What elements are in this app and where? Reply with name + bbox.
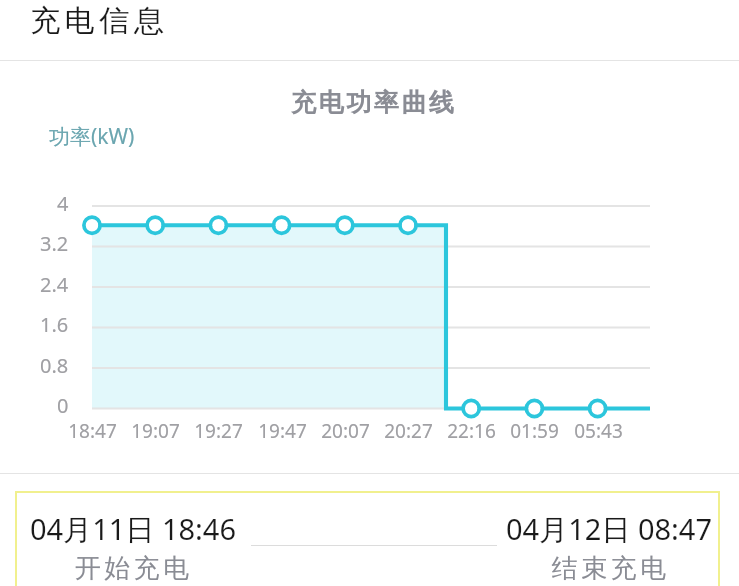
staticText: 18:47	[68, 418, 117, 444]
staticText: 19:27	[194, 418, 243, 444]
staticText: 04月11日 18:46	[30, 509, 237, 549]
staticText: 20:07	[321, 418, 370, 444]
staticText: 结束充电	[550, 552, 668, 585]
staticText: 充电功率曲线	[291, 87, 457, 118]
staticText: 开始充电	[73, 552, 191, 585]
staticText: 充电信息	[28, 2, 166, 40]
staticText: 04月12日 08:47	[506, 509, 713, 549]
staticText: 功率(kW)	[49, 122, 135, 151]
button[interactable]: 充电信息	[0, 0, 739, 60]
staticText: 0.8	[40, 352, 69, 379]
staticText: 1.6	[40, 311, 69, 338]
staticText: 2.4	[40, 271, 69, 298]
staticText: 0	[57, 392, 69, 419]
staticText: 22:16	[447, 418, 496, 444]
staticText: 19:47	[258, 418, 307, 444]
staticText: 4	[57, 190, 69, 217]
button[interactable]: 04月11日 18:46	[15, 491, 720, 586]
staticText: 19:07	[131, 418, 180, 444]
button[interactable]: 充电功率曲线图	[92, 194, 650, 421]
staticText: 3.2	[40, 230, 69, 257]
staticText: 05:43	[574, 418, 623, 444]
staticText: 20:27	[384, 418, 433, 444]
staticText: 01:59	[510, 418, 559, 444]
